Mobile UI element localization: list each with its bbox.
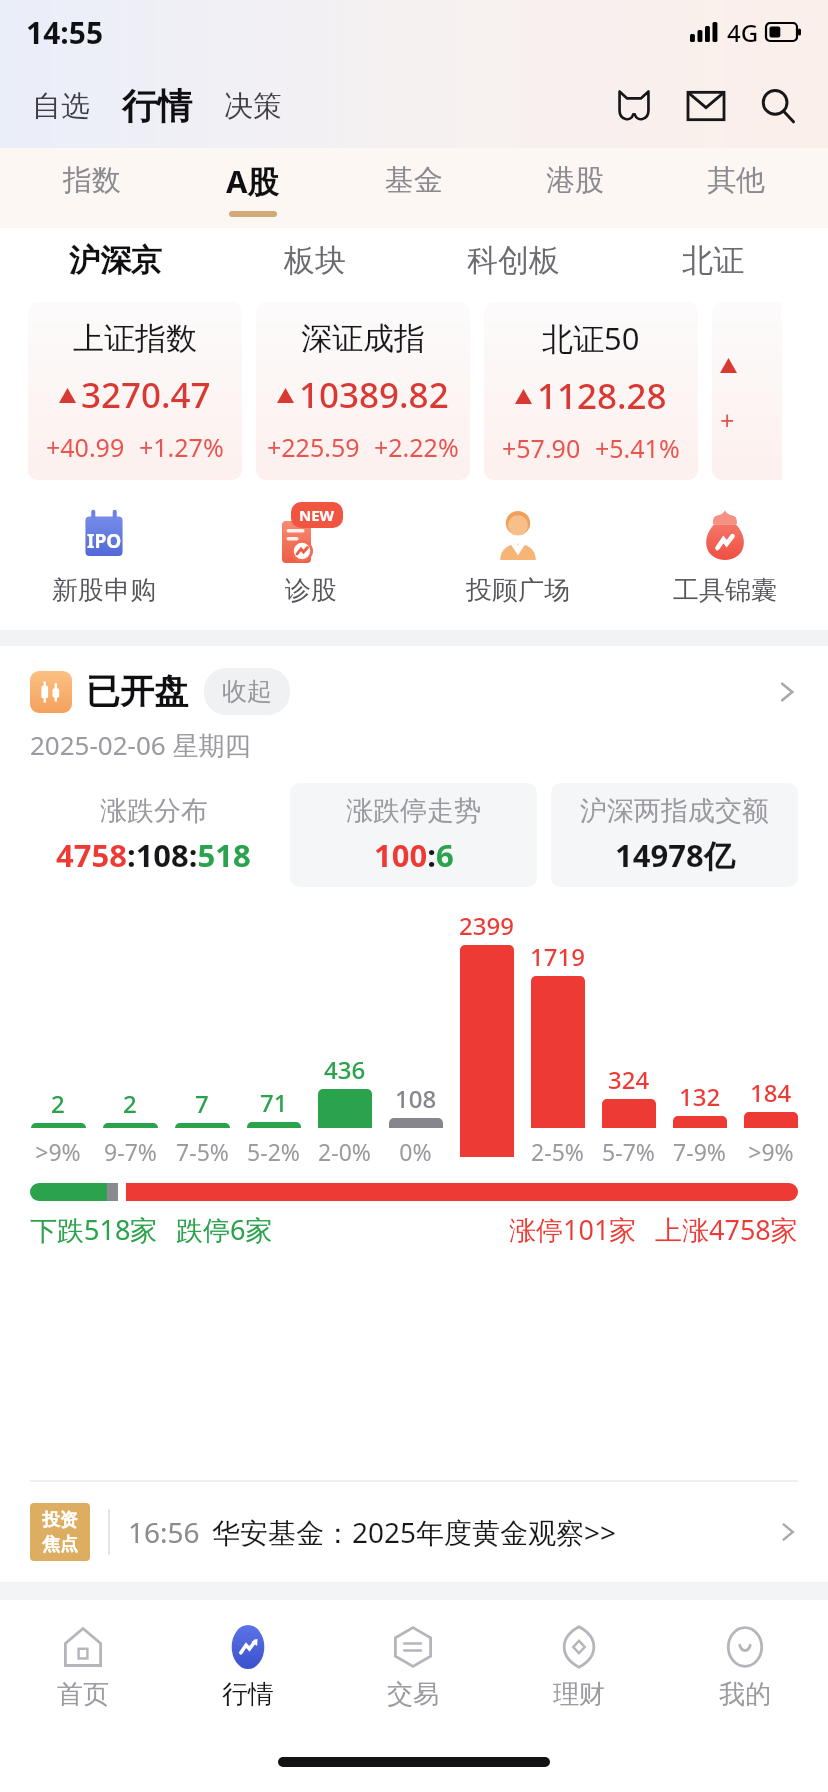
staticText: 我的: [719, 1678, 771, 1711]
staticText: 新股申购: [52, 574, 156, 607]
staticText: 2-0%: [318, 1136, 371, 1167]
staticText: 4758:108:518: [56, 834, 251, 876]
button[interactable]: 已开盘: [30, 668, 798, 715]
staticText: 自选: [32, 88, 90, 125]
button[interactable]: 沪深两指成交额: [551, 783, 798, 887]
staticText: 2025-02-06 星期四: [30, 727, 251, 763]
staticText: 下跌518家: [30, 1211, 158, 1248]
staticText: 涨停101家: [509, 1211, 637, 1248]
button[interactable]: 板块: [215, 228, 414, 292]
staticText: 上涨4758家: [655, 1211, 798, 1248]
button[interactable]: NEW: [207, 486, 414, 622]
staticText: 投资 焦点: [42, 1509, 78, 1555]
staticText: 1128.28: [537, 372, 667, 420]
button[interactable]: 行情: [165, 1600, 330, 1732]
staticText: 涨跌分布: [100, 794, 208, 828]
button[interactable]: 上证指数: [28, 302, 242, 480]
staticText: 2: [123, 1087, 137, 1120]
staticText: 涨跌停走势: [346, 794, 481, 828]
staticText: 1719: [530, 940, 585, 973]
button[interactable]: 北证: [613, 228, 812, 292]
staticText: 北证: [682, 241, 744, 280]
staticText: 收起: [222, 676, 272, 707]
button[interactable]: 自选: [26, 80, 96, 133]
staticText: 108: [395, 1082, 437, 1115]
button[interactable]: 决策: [218, 80, 288, 133]
button[interactable]: +: [712, 302, 782, 480]
staticText: 71: [260, 1086, 288, 1119]
button[interactable]: A股: [172, 148, 333, 228]
button[interactable]: 交易: [330, 1600, 496, 1732]
staticText: 投顾广场: [466, 574, 570, 607]
staticText: 0%: [399, 1136, 432, 1167]
button[interactable]: 行情: [116, 76, 198, 136]
staticText: +5.41%: [595, 431, 680, 465]
staticText: 5-2%: [247, 1136, 300, 1167]
staticText: 7: [195, 1087, 209, 1120]
button[interactable]: Messages: [682, 82, 730, 130]
staticText: 324: [608, 1063, 650, 1096]
staticText: 16:56: [128, 1513, 200, 1551]
staticText: +2.22%: [374, 430, 459, 464]
staticText: A股: [226, 160, 279, 202]
staticText: 沪深两指成交额: [580, 794, 769, 828]
button[interactable]: Search: [754, 82, 802, 130]
staticText: 基金: [385, 162, 443, 199]
button[interactable]: 首页: [0, 1600, 165, 1732]
staticText: 诊股: [285, 574, 337, 607]
staticText: 决策: [224, 88, 282, 125]
staticText: 其他: [707, 162, 765, 199]
staticText: IPO: [87, 528, 122, 554]
staticText: 科创板: [467, 241, 560, 280]
button[interactable]: 港股: [494, 148, 655, 228]
button[interactable]: 投顾广场: [414, 486, 621, 622]
button[interactable]: 其他: [655, 148, 816, 228]
staticText: 深证成指: [301, 319, 425, 358]
staticText: 184: [750, 1076, 792, 1109]
staticText: 10389.82: [299, 371, 449, 419]
button[interactable]: 深证成指: [256, 302, 470, 480]
staticText: +225.59: [267, 430, 360, 464]
button[interactable]: 收起: [204, 668, 290, 715]
staticText: 3270.47: [81, 371, 211, 419]
staticText: 7-9%: [673, 1136, 726, 1167]
staticText: 板块: [284, 241, 346, 280]
staticText: 北证50: [542, 317, 640, 359]
button[interactable]: 北证50: [484, 302, 698, 480]
staticText: 上证指数: [73, 319, 197, 358]
button[interactable]: 基金: [333, 148, 494, 228]
button[interactable]: 科创板: [414, 228, 613, 292]
staticText: 100:6: [374, 834, 454, 876]
staticText: 指数: [63, 162, 121, 199]
button[interactable]: 沪深京: [16, 228, 215, 292]
staticText: +: [720, 403, 735, 437]
staticText: 2: [51, 1087, 65, 1120]
button[interactable]: 涨跌停走势: [290, 783, 537, 887]
staticText: 5-7%: [602, 1136, 655, 1167]
staticText: 2399: [459, 909, 514, 942]
staticText: 已开盘: [86, 670, 188, 713]
button[interactable]: IPO: [0, 486, 207, 622]
button[interactable]: 涨跌分布: [30, 783, 276, 887]
staticText: +57.90: [502, 431, 581, 465]
button[interactable]: 理财: [496, 1600, 662, 1732]
button[interactable]: 我的: [662, 1600, 828, 1732]
button[interactable]: Assistant: [610, 82, 658, 130]
staticText: 跌停6家: [176, 1211, 273, 1248]
staticText: 14:55: [26, 12, 104, 53]
staticText: +1.27%: [139, 430, 224, 464]
staticText: 2-5%: [531, 1136, 584, 1167]
staticText: 7-5%: [176, 1136, 229, 1167]
staticText: 行情: [222, 1678, 274, 1711]
staticText: >9%: [35, 1136, 81, 1167]
staticText: 交易: [387, 1678, 439, 1711]
staticText: >9%: [748, 1136, 794, 1167]
button[interactable]: 工具锦囊: [621, 486, 828, 622]
button[interactable]: 投资 焦点: [30, 1482, 798, 1582]
button[interactable]: 指数: [12, 148, 172, 228]
staticText: 132: [679, 1080, 721, 1113]
staticText: 工具锦囊: [673, 574, 777, 607]
staticText: 14978亿: [615, 834, 735, 876]
staticText: 港股: [546, 162, 604, 199]
